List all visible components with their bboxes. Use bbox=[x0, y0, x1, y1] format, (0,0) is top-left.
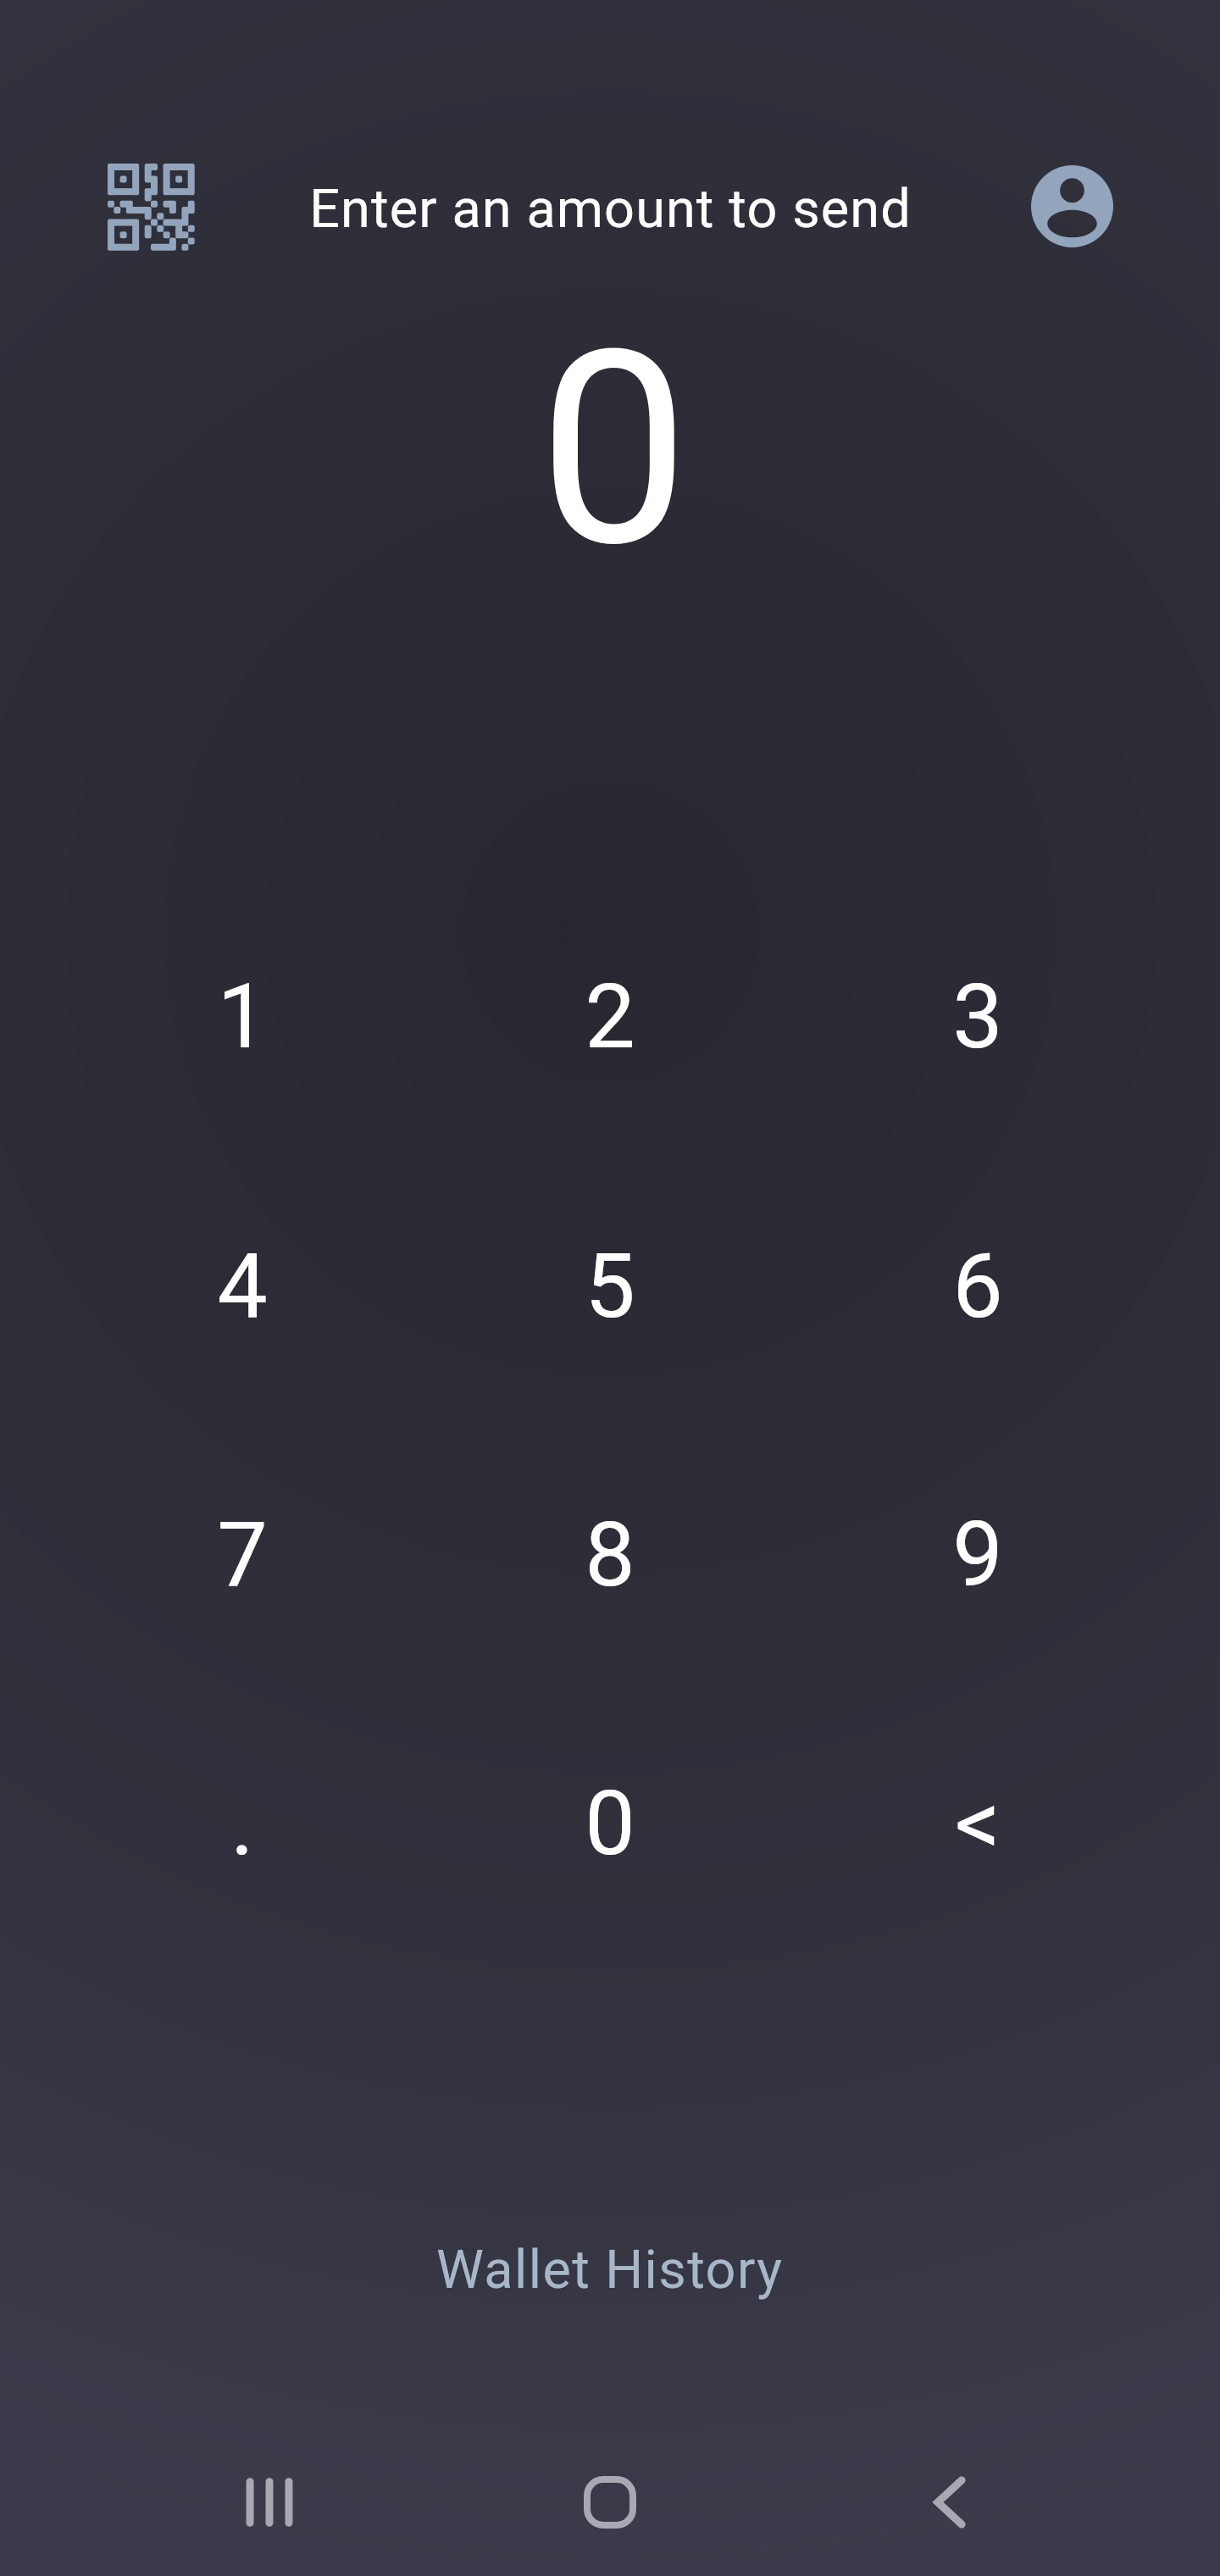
staticText: 7 bbox=[217, 1502, 268, 1607]
button[interactable]: 8 bbox=[428, 1424, 792, 1686]
button[interactable]: 5 bbox=[428, 1155, 792, 1418]
button[interactable]: 2 bbox=[428, 885, 792, 1148]
staticText: 0 bbox=[585, 1771, 635, 1876]
button[interactable]: . bbox=[60, 1692, 424, 1955]
staticText: 6 bbox=[952, 1234, 1003, 1339]
button[interactable]: Wallet History bbox=[0, 2215, 1220, 2325]
button[interactable]: 0 bbox=[428, 1692, 792, 1955]
button[interactable]: 9 bbox=[796, 1424, 1160, 1686]
button[interactable]: < bbox=[796, 1692, 1160, 1955]
staticText: 9 bbox=[952, 1502, 1003, 1607]
staticText: 0 bbox=[538, 292, 690, 572]
staticText: Enter an amount to send bbox=[309, 178, 912, 241]
staticText: 2 bbox=[585, 964, 635, 1069]
button[interactable]: Back bbox=[890, 2451, 1009, 2553]
button[interactable]: 3 bbox=[796, 885, 1160, 1148]
staticText: 8 bbox=[585, 1502, 635, 1607]
button[interactable]: Recent apps bbox=[210, 2451, 329, 2553]
staticText: < bbox=[955, 1771, 1001, 1876]
button[interactable]: Account bbox=[1031, 165, 1113, 247]
staticText: 1 bbox=[217, 964, 268, 1069]
staticText: Wallet History bbox=[436, 2239, 784, 2301]
staticText: 5 bbox=[585, 1234, 635, 1339]
button[interactable]: Scan QR code bbox=[108, 164, 194, 250]
button[interactable]: Home bbox=[551, 2451, 669, 2553]
button[interactable]: 1 bbox=[60, 885, 424, 1148]
staticText: 4 bbox=[217, 1234, 268, 1339]
staticText: . bbox=[230, 1771, 254, 1876]
button[interactable]: 6 bbox=[796, 1155, 1160, 1418]
staticText: 3 bbox=[952, 964, 1003, 1069]
button[interactable]: 4 bbox=[60, 1155, 424, 1418]
button[interactable]: 7 bbox=[60, 1424, 424, 1686]
